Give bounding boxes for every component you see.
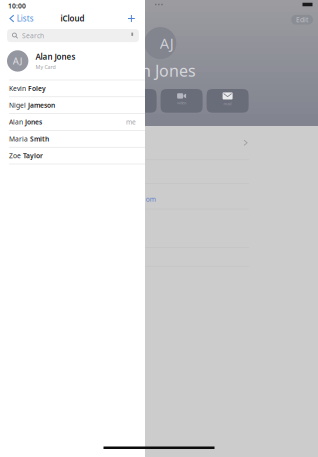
staticText: iCloud xyxy=(60,13,84,24)
staticText: mail xyxy=(224,101,232,106)
button[interactable]: Edit xyxy=(291,15,313,25)
button[interactable]: Alan xyxy=(0,114,145,130)
staticText: Edit xyxy=(296,15,308,24)
staticText: me xyxy=(126,118,136,126)
button[interactable]: mail xyxy=(207,89,249,113)
staticText: Smith xyxy=(30,134,49,143)
button[interactable]: Lists xyxy=(0,12,34,25)
staticText: Taylor xyxy=(23,151,43,160)
staticText: Alan Jones xyxy=(35,51,75,62)
staticText: Kevin xyxy=(9,84,28,93)
button[interactable]: Zoe xyxy=(0,147,145,164)
staticText: Jones xyxy=(25,118,42,126)
button[interactable]: AJ xyxy=(0,42,145,80)
button[interactable]: Search xyxy=(7,29,139,42)
staticText: Jameson xyxy=(28,101,55,110)
staticText: Lists xyxy=(17,13,34,24)
staticText: video xyxy=(177,100,186,105)
staticText: 10:00 xyxy=(8,2,26,10)
staticText: AJ xyxy=(160,33,174,53)
staticText: om xyxy=(146,195,156,204)
staticText: AJ xyxy=(13,55,23,67)
button[interactable]: video xyxy=(161,89,203,113)
staticText: Nigel xyxy=(9,101,28,110)
staticText: My Card xyxy=(35,63,55,71)
button[interactable]: call xyxy=(115,89,157,113)
staticText: Alan xyxy=(9,118,25,126)
button[interactable]: Maria xyxy=(0,131,145,147)
staticText: n Jones xyxy=(141,60,196,81)
button[interactable]: Kevin xyxy=(0,80,145,96)
staticText: Zoe xyxy=(9,151,23,160)
staticText: Search xyxy=(22,31,44,40)
button[interactable]: Nigel xyxy=(0,97,145,113)
staticText: Maria xyxy=(9,134,30,143)
button[interactable]: Add contact xyxy=(128,12,145,25)
staticText: Foley xyxy=(28,84,46,93)
